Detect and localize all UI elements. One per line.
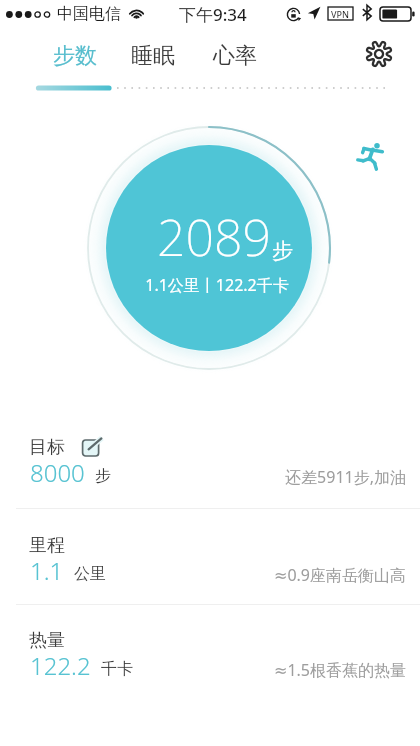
staticText: 热量 <box>29 629 65 652</box>
staticText: 8000 <box>30 456 85 489</box>
staticText: 还差5911步,加油 <box>0 466 406 488</box>
staticText: 1.1 <box>30 554 64 587</box>
staticText: 步 <box>95 466 111 486</box>
staticText: 步 <box>272 238 293 264</box>
button[interactable]: Running <box>354 139 388 173</box>
staticText: 步数 <box>53 42 97 70</box>
button[interactable]: 睡眠 <box>129 38 177 74</box>
staticText: 2089 <box>157 203 271 271</box>
button[interactable]: 里程 <box>0 509 420 601</box>
staticText: 目标 <box>29 436 65 459</box>
staticText: 睡眠 <box>131 42 175 70</box>
staticText: 122.2 <box>30 649 91 682</box>
staticText: ≈1.5根香蕉的热量 <box>0 659 406 681</box>
staticText: VPN <box>331 8 350 20</box>
staticText: 心率 <box>213 42 257 70</box>
staticText: 中国电信 <box>57 4 121 24</box>
staticText: 下午9:34 <box>179 3 247 26</box>
button[interactable]: 热量 <box>0 604 420 696</box>
staticText: ≈0.9座南岳衡山高 <box>0 564 406 586</box>
staticText: 里程 <box>29 534 65 557</box>
button[interactable]: 步数 <box>51 38 99 74</box>
staticText: 1.1公里丨122.2千卡 <box>7 274 420 296</box>
staticText: 千卡 <box>101 659 133 679</box>
button[interactable]: 心率 <box>211 38 259 74</box>
button[interactable]: 目标 <box>0 411 420 503</box>
button[interactable]: Settings <box>357 32 401 76</box>
staticText: 公里 <box>74 564 106 584</box>
